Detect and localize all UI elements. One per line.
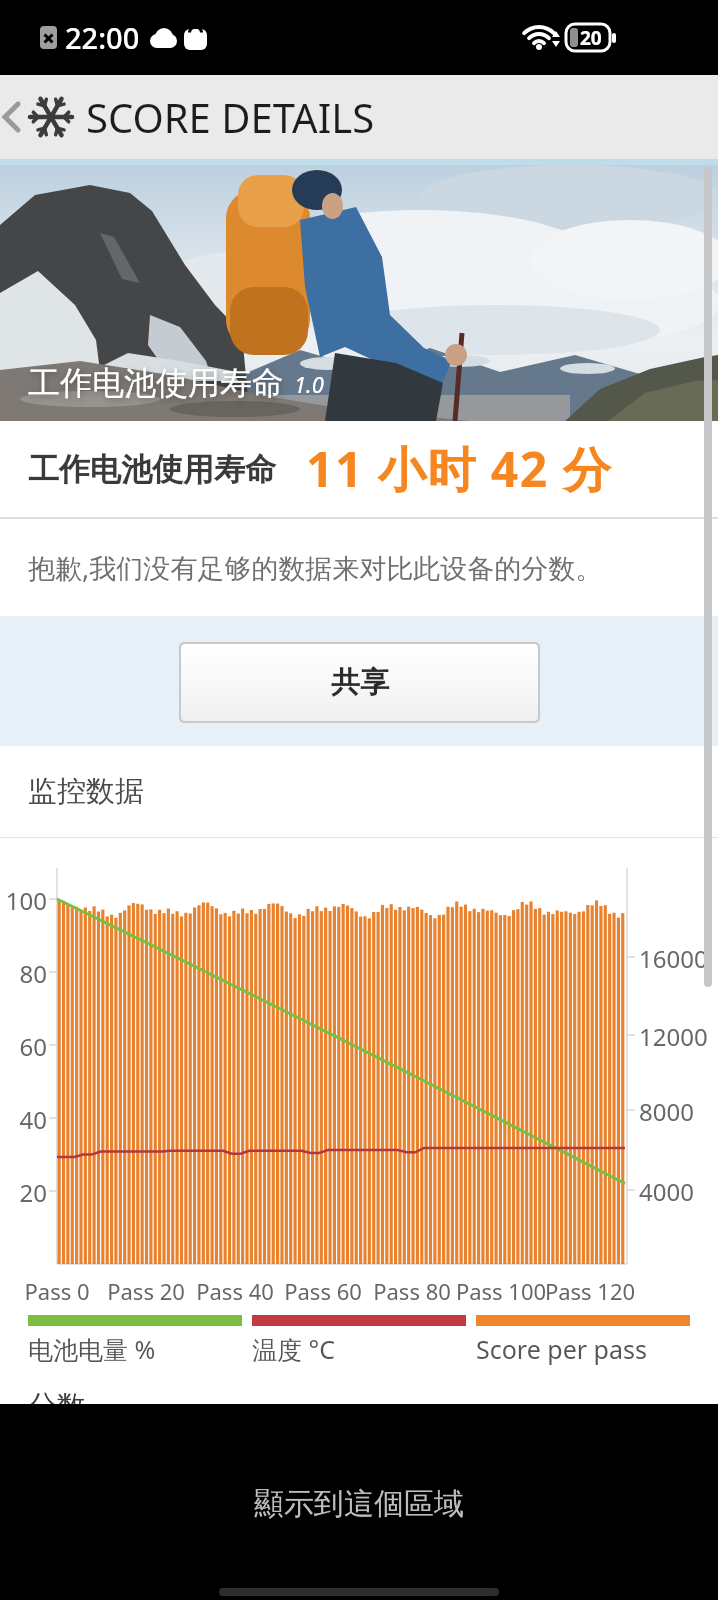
staticText: 11 小时 42 分	[306, 436, 613, 502]
staticText: 监控数据	[28, 773, 144, 810]
staticText: 22:00	[65, 18, 140, 57]
staticText: 共享	[331, 664, 389, 701]
button[interactable]: SCORE DETAILS	[0, 75, 375, 159]
staticText: 1.0	[294, 369, 324, 399]
staticText: SCORE DETAILS	[86, 90, 375, 144]
staticText: 100	[0, 884, 47, 917]
staticText: Pass 60	[263, 1276, 383, 1306]
staticText: 20	[0, 1176, 47, 1209]
staticText: 40	[0, 1103, 47, 1136]
staticText: Pass 0	[0, 1276, 117, 1306]
staticText: Score per pass	[476, 1332, 647, 1366]
staticText: 8000	[639, 1095, 694, 1128]
staticText: 60	[0, 1030, 47, 1063]
staticText: 12000	[639, 1020, 708, 1053]
staticText: 温度 °C	[252, 1332, 336, 1366]
staticText: Pass 80	[352, 1276, 472, 1306]
staticText: 20	[580, 25, 602, 51]
staticText: Pass 20	[86, 1276, 206, 1306]
staticText: 16000	[639, 942, 708, 975]
button[interactable]: Score per pass	[476, 1315, 690, 1366]
staticText: 80	[0, 957, 47, 990]
staticText: 抱歉,我们没有足够的数据来对比此设备的分数。	[28, 549, 603, 586]
button[interactable]: 温度 °C	[252, 1315, 466, 1366]
staticText: 电池电量 %	[28, 1332, 156, 1366]
staticText: 分数	[28, 1388, 86, 1404]
staticText: 工作电池使用寿命	[28, 450, 276, 489]
staticText: 4000	[639, 1175, 694, 1208]
staticText: Pass 40	[175, 1276, 295, 1306]
button[interactable]: 电池电量 %	[28, 1315, 242, 1366]
staticText: Pass 100	[441, 1276, 561, 1306]
staticText: Pass 120	[530, 1276, 650, 1306]
button[interactable]: 共享	[181, 644, 538, 721]
staticText: 工作电池使用寿命	[28, 363, 284, 403]
staticText: 顯示到這個區域	[254, 1485, 464, 1523]
